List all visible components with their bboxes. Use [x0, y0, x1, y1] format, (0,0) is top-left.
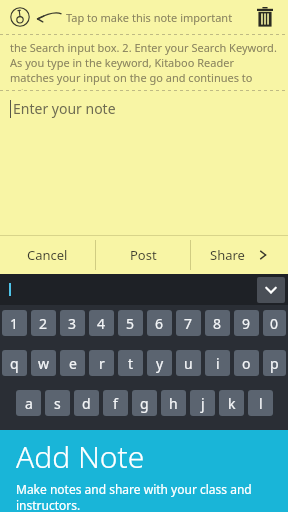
- button[interactable]: Share: [191, 236, 288, 274]
- button[interactable]: a: [16, 390, 41, 416]
- button[interactable]: j: [190, 390, 215, 416]
- button[interactable]: o: [234, 350, 259, 376]
- button[interactable]: Add Note: [0, 430, 288, 512]
- staticText: r: [99, 354, 105, 373]
- button[interactable]: t: [118, 350, 143, 376]
- staticText: 7: [184, 314, 193, 333]
- button[interactable]: x: [74, 430, 99, 456]
- button[interactable]: Shift: [11, 430, 41, 456]
- button[interactable]: u: [176, 350, 201, 376]
- staticText: c: [112, 434, 119, 453]
- button[interactable]: q: [2, 350, 27, 376]
- staticText: Post: [130, 246, 157, 264]
- button[interactable]: y: [147, 350, 172, 376]
- button[interactable]: 6: [147, 310, 172, 336]
- button[interactable]: ,: [67, 468, 89, 494]
- staticText: 2: [39, 314, 48, 333]
- button[interactable]: 7: [176, 310, 201, 336]
- button[interactable]: 2: [31, 310, 56, 336]
- button[interactable]: k: [219, 390, 244, 416]
- button[interactable]: z: [45, 430, 70, 456]
- staticText: d: [82, 394, 91, 413]
- staticText: x: [83, 434, 91, 453]
- button[interactable]: Delete note: [250, 2, 280, 32]
- staticText: t: [128, 354, 134, 373]
- button[interactable]: 1: [2, 310, 27, 336]
- button[interactable]: .: [197, 468, 219, 494]
- staticText: ?123: [31, 472, 62, 491]
- button[interactable]: f: [103, 390, 128, 416]
- button[interactable]: i: [205, 350, 230, 376]
- button[interactable]: w: [31, 350, 56, 376]
- button[interactable]: v: [132, 430, 157, 456]
- button[interactable]: c: [103, 430, 128, 456]
- button[interactable]: space: [93, 468, 193, 494]
- staticText: g: [140, 394, 149, 413]
- button[interactable]: 8: [205, 310, 230, 336]
- staticText: 8: [213, 314, 222, 333]
- staticText: f: [113, 394, 118, 413]
- staticText: s: [54, 394, 61, 413]
- button[interactable]: ?123: [29, 468, 63, 494]
- button[interactable]: Mark important: [6, 3, 34, 31]
- staticText: Make notes and share with your class and…: [16, 481, 272, 512]
- staticText: p: [270, 354, 279, 373]
- button[interactable]: 0: [263, 310, 286, 336]
- staticText: z: [54, 434, 61, 453]
- staticText: k: [228, 394, 236, 413]
- button[interactable]: 4: [89, 310, 114, 336]
- button[interactable]: Cancel: [0, 236, 95, 274]
- staticText: Tap to make this note important: [66, 10, 233, 25]
- button[interactable]: r: [89, 350, 114, 376]
- staticText: 6: [155, 314, 164, 333]
- staticText: q: [10, 354, 19, 373]
- staticText: j: [201, 394, 205, 413]
- staticText: 1: [10, 314, 19, 333]
- staticText: i: [216, 354, 220, 373]
- staticText: e: [69, 354, 77, 373]
- staticText: the Search input box. 2. Enter your Sear…: [10, 40, 278, 90]
- staticText: space: [124, 472, 162, 491]
- staticText: ,: [76, 472, 80, 491]
- button[interactable]: h: [161, 390, 186, 416]
- button[interactable]: 3: [60, 310, 85, 336]
- staticText: l: [259, 394, 263, 413]
- staticText: .: [206, 472, 210, 491]
- staticText: a: [25, 394, 33, 413]
- button[interactable]: d: [74, 390, 99, 416]
- button[interactable]: Post: [96, 236, 190, 274]
- button[interactable]: e: [60, 350, 85, 376]
- staticText: u: [184, 354, 193, 373]
- button[interactable]: l: [248, 390, 273, 416]
- button[interactable]: s: [45, 390, 70, 416]
- staticText: 4: [97, 314, 106, 333]
- staticText: 0: [270, 314, 279, 333]
- staticText: o: [242, 354, 251, 373]
- staticText: 9: [242, 314, 251, 333]
- staticText: w: [38, 354, 50, 373]
- staticText: 3: [68, 314, 77, 333]
- staticText: y: [156, 354, 164, 373]
- staticText: Cancel: [27, 246, 68, 264]
- button[interactable]: p: [263, 350, 286, 376]
- staticText: 5: [126, 314, 135, 333]
- button[interactable]: Hide keyboard: [257, 277, 285, 303]
- button[interactable]: Enter: [223, 468, 259, 494]
- staticText: h: [169, 394, 178, 413]
- staticText: Add Note: [16, 436, 145, 477]
- button[interactable]: 9: [234, 310, 259, 336]
- staticText: Enter your note: [13, 99, 116, 118]
- staticText: Share: [210, 246, 245, 264]
- button[interactable]: g: [132, 390, 157, 416]
- button[interactable]: 5: [118, 310, 143, 336]
